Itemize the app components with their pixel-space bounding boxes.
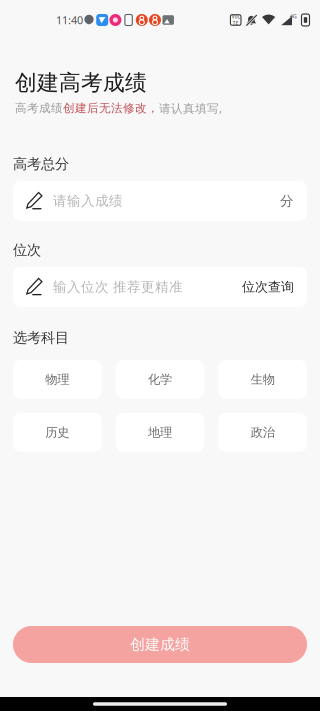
staticText: 地理 bbox=[148, 425, 172, 440]
staticText: 11:40 bbox=[56, 13, 83, 27]
staticText: VoL bbox=[232, 13, 240, 20]
staticText: TE bbox=[233, 20, 239, 26]
button[interactable]: 地理 bbox=[116, 413, 204, 452]
button[interactable]: 物理 bbox=[13, 360, 102, 399]
staticText: 位次 bbox=[13, 241, 41, 259]
staticText: 政治 bbox=[251, 425, 275, 440]
staticText: 创建高考成绩 bbox=[15, 69, 147, 96]
button[interactable]: 政治 bbox=[218, 413, 307, 452]
button[interactable]: 创建成绩 bbox=[13, 626, 307, 663]
button[interactable]: 历史 bbox=[13, 413, 102, 452]
staticText: 请输入成绩 bbox=[53, 192, 123, 209]
staticText: 创建成绩 bbox=[130, 635, 190, 654]
staticText: 高考总分 bbox=[13, 155, 69, 173]
staticText: 历史 bbox=[45, 425, 69, 440]
button[interactable]: 位次查询 bbox=[242, 279, 294, 295]
staticText: 输入位次 推荐更精准 bbox=[53, 278, 183, 295]
staticText: 分 bbox=[280, 192, 294, 209]
staticText: 创建后无法修改， bbox=[63, 101, 159, 115]
staticText: 化学 bbox=[148, 372, 172, 387]
staticText: 物理 bbox=[45, 372, 69, 387]
staticText: 位次查询 bbox=[242, 279, 294, 295]
staticText: 高考成绩 bbox=[15, 101, 63, 115]
staticText: 请认真填写, bbox=[159, 100, 222, 116]
staticText: 生物 bbox=[251, 372, 275, 387]
staticText: 选考科目 bbox=[13, 329, 69, 347]
button[interactable]: 化学 bbox=[116, 360, 204, 399]
button[interactable]: 生物 bbox=[218, 360, 307, 399]
staticText: 4G bbox=[290, 12, 297, 20]
